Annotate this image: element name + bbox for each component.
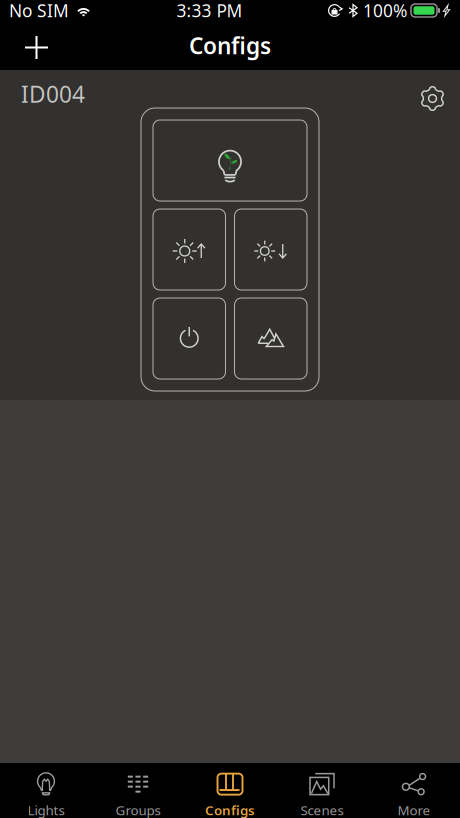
staticText: No SIM [9,0,69,22]
staticText: Lights [27,801,64,818]
button[interactable] [153,298,225,379]
button[interactable]: Lights [0,759,92,818]
button[interactable]: Scenes [276,759,368,818]
staticText: 100% [363,0,407,22]
staticText: ID004 [21,79,85,109]
staticText: Groups [115,801,160,818]
staticText: Configs [205,801,255,818]
staticText: 3:33 PM [176,0,242,22]
button[interactable] [234,298,307,379]
button[interactable]: Groups [92,759,184,818]
staticText: More [397,801,430,818]
button[interactable]: More [368,759,460,818]
staticText: Scenes [300,801,343,818]
button[interactable]: Settings [420,77,445,111]
button[interactable] [153,120,307,201]
button[interactable]: Configs [184,759,276,818]
button[interactable] [153,209,225,290]
button[interactable]: Add configuration [14,22,59,69]
staticText: Configs [189,30,271,60]
button[interactable] [234,209,307,290]
